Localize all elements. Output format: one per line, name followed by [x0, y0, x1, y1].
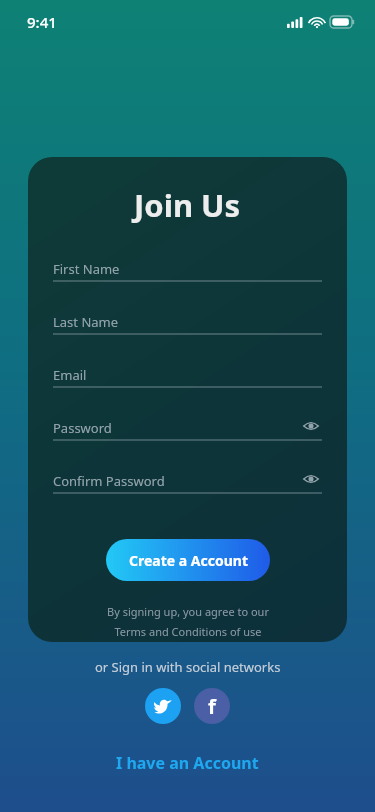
- staticText: I have an Account: [116, 752, 259, 774]
- button[interactable]: Show password: [300, 468, 322, 490]
- button[interactable]: Email: [53, 358, 322, 411]
- button[interactable]: First Name: [53, 252, 322, 305]
- button[interactable]: Last Name: [53, 305, 322, 358]
- staticText: By signing up, you agree to our: [107, 604, 269, 619]
- staticText: f: [208, 693, 216, 720]
- button[interactable]: Terms and Conditions of use: [114, 624, 262, 639]
- staticText: First Name: [53, 260, 120, 278]
- staticText: Terms and Conditions of use: [114, 624, 262, 639]
- staticText: Join Us: [134, 184, 241, 226]
- button[interactable]: Sign in with Twitter: [145, 688, 181, 724]
- staticText: 9:41: [27, 12, 57, 32]
- staticText: Create a Account: [129, 551, 248, 570]
- button[interactable]: Create a Account: [106, 539, 270, 581]
- button[interactable]: Sign in with Facebook: [194, 688, 230, 724]
- button[interactable]: Password: [53, 411, 322, 464]
- button[interactable]: Show password: [300, 415, 322, 437]
- staticText: Password: [53, 419, 112, 437]
- staticText: Email: [53, 366, 87, 384]
- button[interactable]: Confirm Password: [53, 464, 322, 517]
- staticText: or Sign in with social networks: [95, 658, 281, 676]
- button[interactable]: I have an Account: [104, 748, 271, 778]
- staticText: Confirm Password: [53, 472, 165, 490]
- staticText: Last Name: [53, 313, 119, 331]
